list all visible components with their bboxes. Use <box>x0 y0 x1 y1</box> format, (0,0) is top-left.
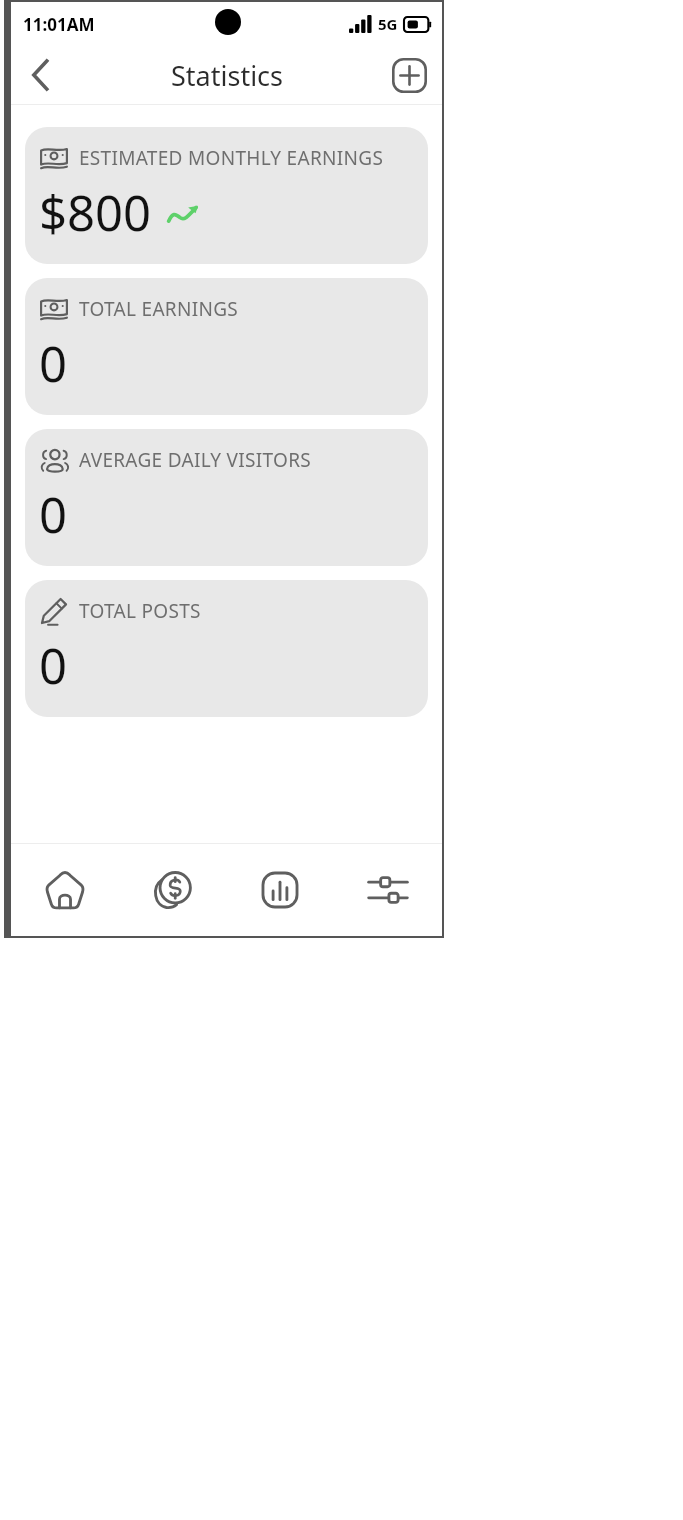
staticText: 5G <box>378 14 398 34</box>
staticText: 0 <box>39 481 68 548</box>
button[interactable]: TOTAL EARNINGS <box>25 278 428 415</box>
staticText: TOTAL POSTS <box>79 598 201 624</box>
button[interactable]: TOTAL POSTS <box>25 580 428 717</box>
staticText: TOTAL EARNINGS <box>79 296 239 322</box>
button[interactable]: Add <box>388 54 430 96</box>
button[interactable]: ESTIMATED MONTHLY EARNINGS <box>25 127 428 264</box>
staticText: 0 <box>39 632 68 699</box>
staticText: Statistics <box>171 57 283 94</box>
button[interactable]: Settings <box>334 844 442 936</box>
button[interactable]: AVERAGE DAILY VISITORS <box>25 429 428 566</box>
button[interactable]: Home <box>11 844 118 936</box>
staticText: 0 <box>39 330 68 397</box>
button[interactable]: Statistics <box>226 844 334 936</box>
button[interactable]: Back <box>19 53 63 97</box>
button[interactable]: Earnings <box>118 844 226 936</box>
staticText: $800 <box>39 179 152 246</box>
staticText: 11:01AM <box>23 13 95 36</box>
staticText: ESTIMATED MONTHLY EARNINGS <box>79 145 384 171</box>
staticText: AVERAGE DAILY VISITORS <box>79 447 311 473</box>
